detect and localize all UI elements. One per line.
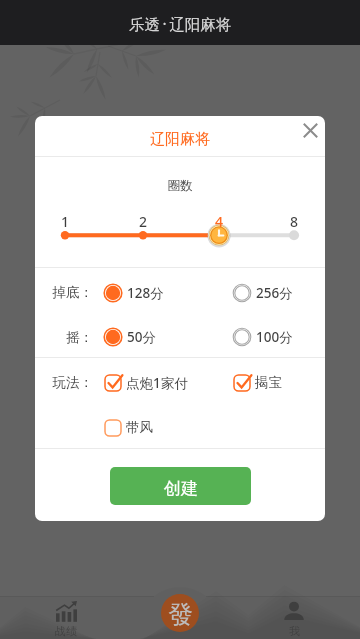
staticText: 1: [61, 212, 70, 231]
staticText: 摇：: [35, 329, 93, 346]
staticText: 2: [139, 212, 148, 231]
staticText: 128分: [127, 284, 164, 302]
button[interactable]: 创建: [110, 467, 251, 505]
button[interactable]: 50分: [103, 313, 232, 357]
staticText: 玩法：: [35, 374, 93, 391]
staticText: 4: [215, 212, 224, 231]
button[interactable]: 关闭: [296, 116, 324, 144]
staticText: 我: [289, 624, 300, 638]
staticText: 乐透 · 辽阳麻将: [129, 13, 232, 34]
staticText: 创建: [164, 478, 198, 499]
staticText: 100分: [256, 328, 293, 346]
button[interactable]: 点炮1家付: [103, 358, 232, 403]
button[interactable]: 战绩: [55, 596, 77, 638]
staticText: 辽阳麻将: [150, 130, 210, 149]
staticText: 带风: [126, 419, 153, 436]
staticText: 掉底：: [35, 284, 93, 301]
staticText: 50分: [127, 328, 156, 346]
staticText: 战绩: [55, 624, 77, 638]
staticText: 揭宝: [255, 374, 282, 391]
button[interactable]: 带风: [103, 403, 232, 448]
staticText: 發: [168, 599, 193, 630]
staticText: 点炮1家付: [126, 374, 188, 392]
button[interactable]: 100分: [232, 313, 325, 357]
button[interactable]: 发起: [161, 594, 199, 632]
button[interactable]: 我: [283, 596, 305, 638]
staticText: 256分: [256, 284, 293, 302]
button[interactable]: 揭宝: [232, 358, 325, 403]
button[interactable]: 128分: [103, 268, 232, 313]
button[interactable]: 256分: [232, 268, 325, 313]
staticText: 8: [290, 212, 299, 231]
staticText: 圈数: [35, 178, 325, 194]
